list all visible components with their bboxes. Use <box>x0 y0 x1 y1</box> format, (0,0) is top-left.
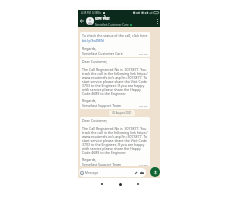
staticText: Regards, <box>82 98 97 103</box>
staticText: Message <box>85 171 99 175</box>
staticText: Dear Customer, <box>82 59 108 64</box>
staticText: Servefast Customer Care <box>82 51 123 56</box>
button[interactable]: Home <box>119 183 122 186</box>
staticText: 4:10 pm <box>139 164 148 167</box>
staticText: Dear Customer, <box>82 118 108 123</box>
staticText: bit.ly/3v49EN <box>82 38 104 43</box>
button[interactable]: Message <box>79 168 146 177</box>
staticText: 30 August 2021 <box>112 111 132 115</box>
staticText: ग्राम सेवा <box>95 16 110 22</box>
staticText: The Call Registered No is 3073877. You t… <box>82 126 148 155</box>
button[interactable]: Back <box>79 18 85 24</box>
staticText: Regards, <box>82 46 97 51</box>
staticText: Servefast Support Team <box>82 162 122 167</box>
button[interactable]: Back <box>78 15 160 27</box>
staticText: Servefast Customer Care <box>95 23 129 27</box>
button[interactable]: Dear Customer, <box>80 117 150 168</box>
staticText: 3:42 pm <box>139 53 148 56</box>
button[interactable]: More options <box>156 15 159 27</box>
staticText: Servefast Support Team <box>82 103 122 108</box>
staticText: To check the status of the call, click h… <box>82 33 148 38</box>
button[interactable]: 30 August 2021 <box>109 110 135 116</box>
button[interactable]: Dear Customer, <box>80 58 150 109</box>
staticText: 4:38 PM 0.3KB/s <box>81 11 102 15</box>
button[interactable]: To check the status of the call, click h… <box>80 32 150 57</box>
button[interactable]: Dear Customer, The Call Registered No is… <box>80 7 150 27</box>
staticText: Dear Customer, The Call Registered No is… <box>82 23 148 27</box>
button[interactable]: Voice message <box>150 167 160 177</box>
staticText: The Call Registered No is 3073877. You t… <box>82 67 148 96</box>
staticText: 3:52 pm <box>139 105 148 108</box>
staticText: Regards, <box>82 157 97 162</box>
